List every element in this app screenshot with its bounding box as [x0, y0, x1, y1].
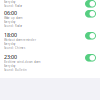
staticText: Sound: Radar — [4, 24, 22, 28]
staticText: Sound: Radar — [4, 4, 22, 8]
button[interactable]: 06:00 — [0, 8, 100, 30]
staticText: Every day — [4, 42, 15, 46]
staticText: Sound: Chimes — [4, 46, 25, 50]
button[interactable]: 18:00 — [0, 30, 100, 52]
button[interactable]: Every day — [0, 0, 100, 8]
staticText: Workout alarm reminder — [4, 38, 36, 42]
staticText: Every day — [4, 0, 15, 4]
staticText: 23:00 — [4, 53, 17, 61]
staticText: Sound: Bulletin — [4, 68, 27, 72]
staticText: 18:00 — [4, 31, 17, 39]
staticText: Every day — [4, 20, 15, 24]
staticText: Every day — [4, 64, 15, 68]
staticText: Wake up alarm — [4, 16, 22, 20]
staticText: 06:00 — [4, 9, 17, 17]
staticText: Bedtime wind-down alarm — [4, 60, 40, 64]
button[interactable]: 23:00 — [0, 52, 100, 78]
